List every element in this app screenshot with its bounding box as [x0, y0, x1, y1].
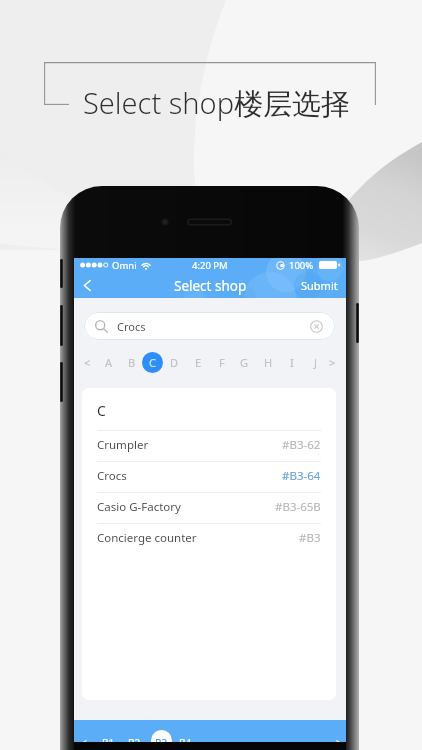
button[interactable]: Crumpler: [82, 431, 336, 461]
staticText: E: [195, 355, 202, 370]
staticText: >: [336, 736, 342, 742]
button[interactable]: Submit: [293, 273, 346, 298]
button[interactable]: B: [121, 352, 142, 373]
staticText: #B3: [299, 530, 321, 546]
staticText: F: [219, 355, 225, 370]
staticText: #B3-62: [282, 437, 321, 453]
button[interactable]: I: [281, 352, 302, 373]
staticText: Omni: [112, 259, 137, 272]
button[interactable]: [151, 730, 172, 742]
staticText: >: [329, 355, 336, 370]
staticText: #B3-64: [282, 468, 321, 484]
staticText: B1: [102, 736, 115, 742]
button[interactable]: D: [164, 352, 185, 373]
button[interactable]: F: [211, 352, 232, 373]
button[interactable]: B4: [174, 736, 196, 742]
staticText: #B3-65B: [275, 499, 321, 515]
staticText: C: [97, 401, 106, 420]
button[interactable]: B1: [97, 736, 119, 742]
button[interactable]: J: [305, 352, 326, 373]
staticText: I: [290, 355, 294, 370]
staticText: G: [240, 355, 249, 370]
button[interactable]: Crocs: [82, 462, 336, 492]
button[interactable]: E: [188, 352, 209, 373]
button[interactable]: >: [322, 352, 343, 373]
button[interactable]: B3: [150, 736, 172, 742]
staticText: B2: [128, 736, 141, 742]
button[interactable]: >: [328, 736, 346, 742]
staticText: D: [170, 355, 179, 370]
staticText: Crocs: [97, 468, 127, 484]
staticText: <: [81, 736, 87, 742]
staticText: B4: [179, 736, 192, 742]
staticText: C: [149, 355, 156, 370]
button[interactable]: Casio G-Factory: [82, 493, 336, 523]
button[interactable]: Concierge counter: [82, 524, 336, 554]
button[interactable]: Crocs: [84, 312, 335, 340]
staticText: A: [105, 355, 113, 370]
button[interactable]: C: [142, 352, 163, 373]
staticText: Crumpler: [97, 437, 149, 453]
staticText: 100%: [289, 259, 314, 272]
button[interactable]: <: [77, 352, 98, 373]
staticText: J: [314, 355, 318, 370]
button[interactable]: H: [258, 352, 279, 373]
button[interactable]: B2: [123, 736, 145, 742]
button[interactable]: <: [74, 736, 95, 742]
button[interactable]: G: [234, 352, 255, 373]
staticText: H: [264, 355, 273, 370]
staticText: Submit: [301, 278, 338, 293]
staticText: B3: [155, 736, 168, 742]
button[interactable]: Back: [75, 273, 99, 297]
staticText: <: [84, 355, 91, 370]
button[interactable]: A: [98, 352, 119, 373]
staticText: Casio G-Factory: [97, 499, 181, 515]
staticText: Select shop: [174, 277, 247, 295]
staticText: Concierge counter: [97, 530, 197, 546]
staticText: B: [128, 355, 136, 370]
button[interactable]: Clear search: [308, 318, 324, 334]
staticText: Crocs: [117, 319, 146, 334]
staticText: 4:20 PM: [192, 259, 228, 272]
staticText: Select shop楼层选择: [83, 83, 351, 123]
